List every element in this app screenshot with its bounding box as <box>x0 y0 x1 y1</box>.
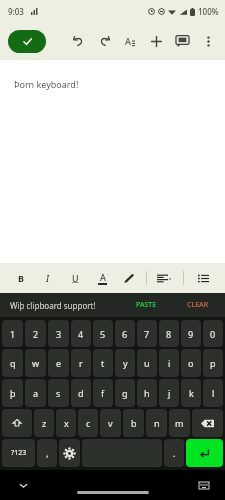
button[interactable]: 0 <box>203 320 223 347</box>
staticText: 4 <box>78 328 84 340</box>
button[interactable]: 7 <box>137 320 157 347</box>
button[interactable]: 2 <box>25 320 46 347</box>
button[interactable]: r <box>71 349 91 377</box>
button[interactable]: v <box>100 409 121 437</box>
button[interactable]: Bulleted list <box>196 266 210 290</box>
staticText: . <box>173 447 176 459</box>
staticText: a <box>33 387 39 399</box>
button[interactable]: d <box>71 379 91 407</box>
button[interactable]: 1 <box>2 320 23 347</box>
staticText: U <box>72 272 79 284</box>
staticText: m <box>175 417 184 429</box>
button[interactable]: More options <box>195 28 221 54</box>
staticText: u <box>144 357 150 369</box>
staticText: y <box>123 357 128 369</box>
button[interactable]: Bold <box>14 266 28 290</box>
button[interactable]: w <box>25 349 46 377</box>
button[interactable]: PASTE <box>132 300 161 310</box>
button[interactable]: 8 <box>159 320 179 347</box>
button[interactable]: 6 <box>115 320 135 347</box>
button[interactable]: h <box>137 379 157 407</box>
staticText: Þorn keyboard! <box>14 78 79 90</box>
button[interactable]: Add <box>143 28 169 54</box>
staticText: þ <box>10 387 16 399</box>
button[interactable]: a <box>25 379 46 407</box>
button[interactable]: 5 <box>93 320 113 347</box>
staticText: g <box>122 387 128 399</box>
button[interactable]: q <box>2 349 23 377</box>
button[interactable]: 9 <box>181 320 201 347</box>
staticText: A <box>125 35 131 47</box>
button[interactable]: t <box>93 349 113 377</box>
button[interactable]: Save <box>8 30 46 53</box>
staticText: q <box>10 357 16 369</box>
button[interactable]: 3 <box>48 320 69 347</box>
staticText: b <box>131 417 137 429</box>
button[interactable]: 4 <box>71 320 91 347</box>
button[interactable]: c <box>78 409 98 437</box>
staticText: 9:03 <box>8 6 24 17</box>
staticText: 100% <box>198 6 219 17</box>
button[interactable]: b <box>123 409 144 437</box>
button[interactable]: Settings <box>59 439 80 467</box>
button[interactable]: Underline <box>68 266 82 290</box>
button[interactable]: j <box>159 379 179 407</box>
staticText: 5 <box>100 328 106 340</box>
button[interactable]: Undo <box>65 28 91 54</box>
staticText: 9 <box>188 328 194 340</box>
staticText: r <box>79 357 83 369</box>
button[interactable]: Comment <box>169 28 195 54</box>
button[interactable]: Format text <box>117 28 143 54</box>
button[interactable]: Redo <box>91 28 117 54</box>
button[interactable]: k <box>181 379 201 407</box>
staticText: k <box>189 387 194 399</box>
staticText: 3 <box>56 328 62 340</box>
button[interactable]: Backspace <box>192 409 223 437</box>
button[interactable]: o <box>181 349 201 377</box>
staticText: PASTE <box>136 300 157 310</box>
button[interactable]: , <box>37 439 57 467</box>
button[interactable]: n <box>146 409 167 437</box>
staticText: 1 <box>10 328 16 340</box>
staticText: s <box>56 387 61 399</box>
staticText: l <box>212 387 215 399</box>
button[interactable]: Alignment <box>157 266 171 290</box>
staticText: c <box>86 417 91 429</box>
button[interactable]: m <box>169 409 190 437</box>
staticText: 7 <box>144 328 150 340</box>
button[interactable]: þ <box>2 379 23 407</box>
button[interactable]: x <box>56 409 76 437</box>
staticText: ?123 <box>11 448 27 458</box>
button[interactable]: CLEAR <box>183 300 213 310</box>
button[interactable]: l <box>203 379 223 407</box>
button[interactable]: p <box>203 349 223 377</box>
staticText: w <box>32 357 40 369</box>
staticText: i <box>168 357 171 369</box>
button[interactable]: i <box>159 349 179 377</box>
button[interactable]: s <box>48 379 69 407</box>
button[interactable]: Text color <box>95 266 109 290</box>
button[interactable]: Italic <box>41 266 55 290</box>
button[interactable]: Hide keyboard <box>16 478 30 492</box>
staticText: h <box>144 387 150 399</box>
button[interactable]: Symbols <box>2 439 35 467</box>
staticText: 8 <box>166 328 172 340</box>
button[interactable]: Switch keyboard <box>197 478 211 492</box>
button[interactable]: . <box>164 439 184 467</box>
button[interactable]: f <box>93 379 113 407</box>
button[interactable]: e <box>48 349 69 377</box>
staticText: z <box>42 417 47 429</box>
button[interactable]: u <box>137 349 157 377</box>
button[interactable]: g <box>115 379 135 407</box>
staticText: B <box>18 272 24 284</box>
staticText: n <box>154 417 160 429</box>
staticText: A <box>100 271 106 283</box>
button[interactable]: y <box>115 349 135 377</box>
staticText: v <box>108 417 113 429</box>
button[interactable]: Shift <box>2 409 32 437</box>
staticText: d <box>78 387 84 399</box>
button[interactable]: Highlight <box>122 266 136 290</box>
button[interactable]: z <box>34 409 54 437</box>
button[interactable]: Enter <box>186 439 223 467</box>
